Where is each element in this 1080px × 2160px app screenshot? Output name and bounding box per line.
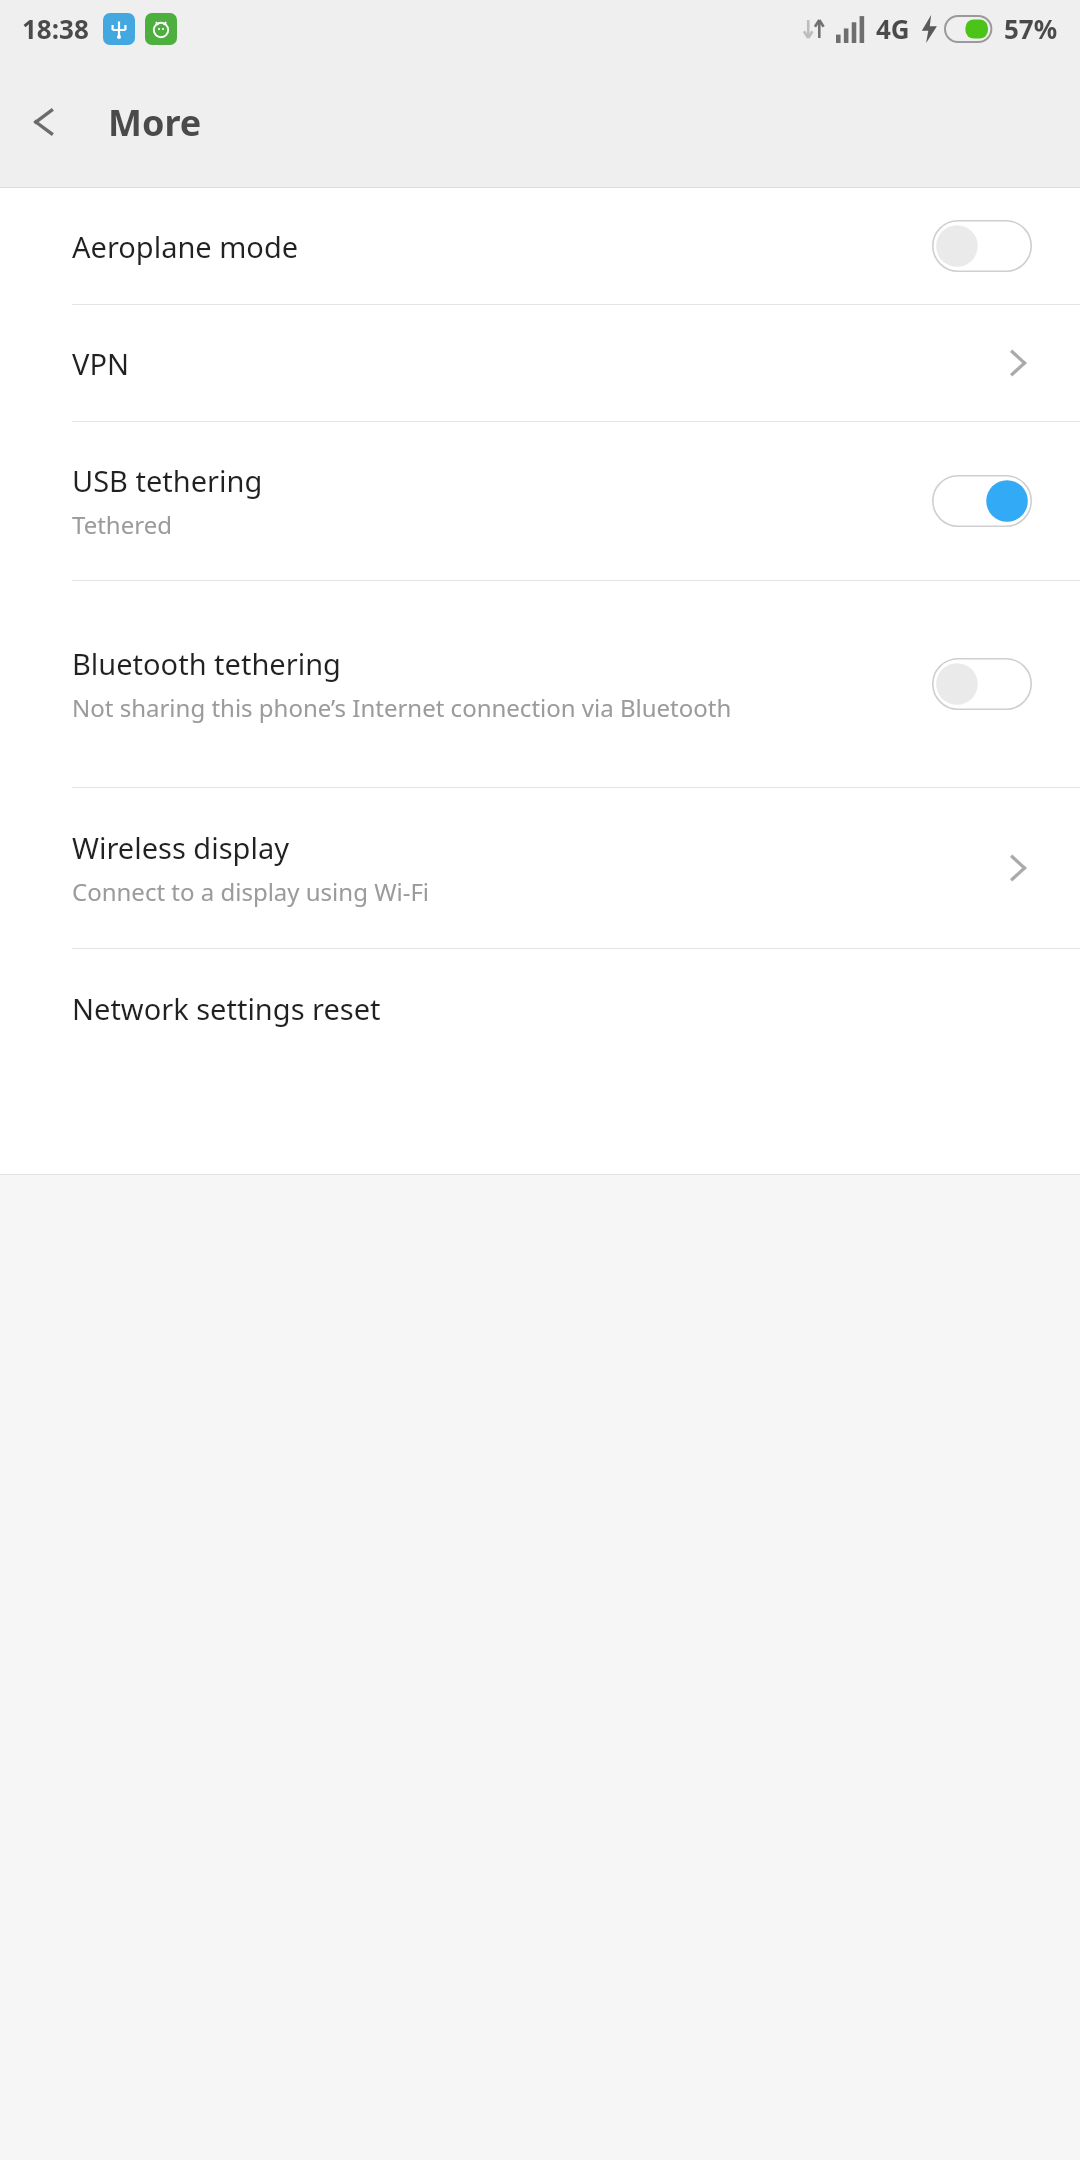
button[interactable]: VPN [0, 305, 1080, 421]
staticText: Wireless display [72, 828, 289, 867]
staticText: USB tethering [72, 461, 263, 500]
button[interactable]: Back [14, 92, 74, 152]
staticText: More [108, 98, 202, 147]
staticText: Bluetooth tethering [72, 644, 341, 683]
button[interactable]: Aeroplane mode [0, 188, 1080, 304]
staticText: Connect to a display using Wi-Fi [72, 875, 430, 908]
button[interactable]: Network settings reset [0, 949, 1080, 1067]
staticText: 57% [1004, 11, 1058, 46]
staticText: VPN [72, 344, 129, 383]
button[interactable]: Bluetooth tethering [0, 581, 1080, 787]
staticText: 4G [876, 11, 910, 46]
button[interactable]: Toggle off [932, 220, 1032, 272]
staticText: Aeroplane mode [72, 227, 299, 266]
button[interactable]: Wireless display [0, 788, 1080, 948]
button[interactable]: USB tethering [0, 422, 1080, 580]
button[interactable]: Toggle on [932, 475, 1032, 527]
staticText: Network settings reset [72, 989, 381, 1028]
button[interactable]: Toggle off [932, 658, 1032, 710]
staticText: Not sharing this phone’s Internet connec… [72, 691, 732, 724]
staticText: 18:38 [22, 11, 89, 46]
staticText: Tethered [72, 508, 172, 541]
